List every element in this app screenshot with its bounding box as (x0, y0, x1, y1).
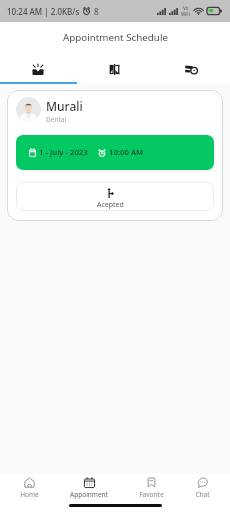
button[interactable]: Rooms (76, 56, 153, 82)
button[interactable]: Acepted (16, 182, 214, 211)
staticText: Vo (183, 5, 189, 11)
staticText: Dental (46, 115, 67, 124)
staticText: Appoinment (70, 490, 108, 499)
button[interactable]: Completed (153, 56, 230, 82)
staticText: 10:00 AM (109, 147, 144, 158)
staticText: Acepted (97, 200, 124, 210)
button[interactable]: Chat (195, 477, 210, 499)
staticText: Home (20, 490, 39, 499)
staticText: Murali (46, 98, 83, 114)
staticText: Chat (195, 490, 210, 499)
button[interactable]: Appoinment (70, 477, 108, 499)
staticText: WiFi (181, 11, 190, 17)
button[interactable]: New requests (0, 56, 76, 82)
staticText: Favorite (139, 490, 164, 499)
button[interactable]: Home (20, 477, 39, 499)
staticText: 10:24 AM | 2.0KB/s (7, 6, 80, 17)
staticText: Appointment Schedule (63, 31, 168, 44)
staticText: 1 - July - 2023 (39, 147, 88, 158)
button[interactable]: Favorite (139, 477, 164, 499)
staticText: 8 (94, 6, 99, 17)
